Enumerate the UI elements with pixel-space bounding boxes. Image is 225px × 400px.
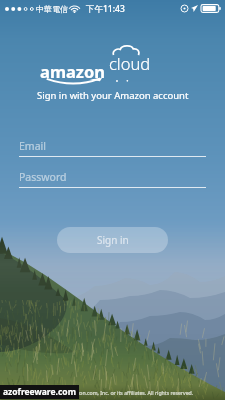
staticText: cloud drive [109,52,190,82]
button[interactable]: Sign in [57,227,168,253]
staticText: Password [19,170,67,184]
button[interactable]: Email [19,138,206,157]
staticText: azofreeware.com [3,386,76,398]
staticText: Email [19,139,46,153]
staticText: 中華電信 [36,4,68,14]
staticText: Sign in [97,233,129,247]
staticText: 下午11:43 [86,3,125,15]
staticText: © 1996-2014, Amazon.com, Inc. or its aff… [32,389,194,396]
staticText: amazon [40,60,106,82]
staticText: Sign in with your Amazon account [37,89,189,102]
button[interactable]: Password [19,169,206,188]
other: Amazon Cloud Drive [38,50,188,80]
